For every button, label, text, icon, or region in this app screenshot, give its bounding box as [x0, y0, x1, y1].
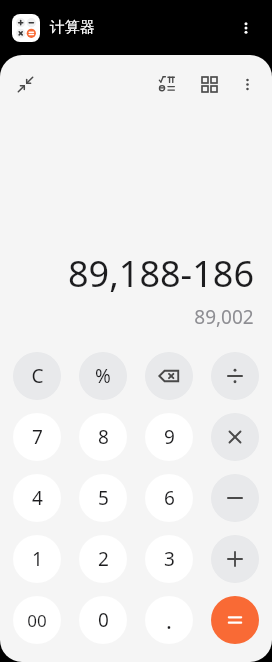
- staticText: 2: [98, 546, 109, 572]
- button[interactable]: Minus: [211, 474, 259, 522]
- button[interactable]: 4: [13, 474, 61, 522]
- staticText: 3: [164, 546, 175, 572]
- button[interactable]: %: [79, 352, 127, 400]
- button[interactable]: Calculator icon: [12, 14, 40, 42]
- button[interactable]: Converter: [194, 69, 224, 99]
- staticText: 计算器: [50, 18, 95, 37]
- button[interactable]: Backspace: [145, 352, 193, 400]
- button[interactable]: Plus: [211, 535, 259, 583]
- button[interactable]: Scientific: [152, 69, 182, 99]
- button[interactable]: Multiply: [211, 413, 259, 461]
- button[interactable]: 7: [13, 413, 61, 461]
- staticText: .: [166, 605, 172, 635]
- button[interactable]: 1: [13, 535, 61, 583]
- button[interactable]: 3: [145, 535, 193, 583]
- staticText: 89,002: [194, 304, 254, 330]
- staticText: 9: [164, 424, 175, 450]
- staticText: %: [95, 363, 111, 389]
- button[interactable]: Collapse: [10, 69, 40, 99]
- staticText: 89,188-186: [68, 249, 254, 298]
- button[interactable]: 5: [79, 474, 127, 522]
- button[interactable]: 8: [79, 413, 127, 461]
- button[interactable]: 9: [145, 413, 193, 461]
- button[interactable]: .: [145, 596, 193, 644]
- button[interactable]: C: [13, 352, 61, 400]
- button[interactable]: Menu: [232, 69, 262, 99]
- staticText: 7: [32, 424, 43, 450]
- staticText: 1: [32, 546, 43, 572]
- button[interactable]: More options: [232, 14, 260, 42]
- staticText: 5: [98, 485, 109, 511]
- button[interactable]: 2: [79, 535, 127, 583]
- button[interactable]: 00: [13, 596, 61, 644]
- staticText: 8: [98, 424, 109, 450]
- button[interactable]: Divide: [211, 352, 259, 400]
- button[interactable]: 0: [79, 596, 127, 644]
- button[interactable]: Equals: [211, 596, 259, 644]
- staticText: 4: [32, 485, 43, 511]
- button[interactable]: 6: [145, 474, 193, 522]
- staticText: C: [31, 363, 44, 389]
- staticText: 0: [98, 607, 109, 633]
- staticText: 6: [164, 485, 175, 511]
- staticText: 00: [27, 609, 47, 632]
